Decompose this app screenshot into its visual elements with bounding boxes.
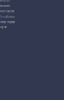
staticText: Change Language (0, 21, 15, 23)
staticText: Notifications (0, 0, 10, 2)
staticText: Notifications (0, 10, 14, 13)
staticText: Notifications (0, 5, 10, 7)
staticText: Terms & Conditions (0, 16, 15, 18)
staticText: Log Out (0, 26, 7, 28)
